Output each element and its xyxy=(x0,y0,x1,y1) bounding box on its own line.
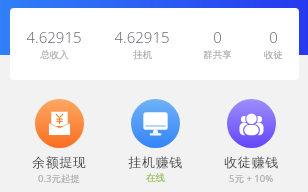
button[interactable]: 收徒赚钱 xyxy=(203,99,299,185)
staticText: 收徒 xyxy=(264,49,283,61)
button[interactable]: 4.62915 xyxy=(26,27,82,61)
button[interactable]: 0 xyxy=(203,27,232,61)
staticText: 收徒赚钱 xyxy=(224,154,279,170)
button[interactable]: 余额提现 xyxy=(11,99,107,185)
button[interactable]: 0 xyxy=(264,27,283,61)
staticText: 在线 xyxy=(146,172,165,184)
staticText: 0 xyxy=(213,27,222,47)
staticText: 挂机 xyxy=(133,49,152,61)
staticText: 5元 + 10% xyxy=(229,172,274,185)
staticText: 总收入 xyxy=(40,49,69,61)
staticText: 0.3元起提 xyxy=(38,172,80,185)
staticText: 挂机赚钱 xyxy=(128,154,183,170)
button[interactable]: 挂机赚钱 xyxy=(107,99,203,184)
staticText: 0 xyxy=(269,27,278,47)
staticText: 余额提现 xyxy=(32,154,87,170)
other: 收徒赚钱 xyxy=(227,99,276,148)
other: 余额提现 xyxy=(35,99,84,148)
button[interactable]: 4.62915 xyxy=(114,27,170,61)
staticText: 群共享 xyxy=(203,49,232,61)
other: 挂机赚钱 xyxy=(131,99,180,148)
staticText: 4.62915 xyxy=(26,27,82,47)
staticText: 4.62915 xyxy=(114,27,170,47)
